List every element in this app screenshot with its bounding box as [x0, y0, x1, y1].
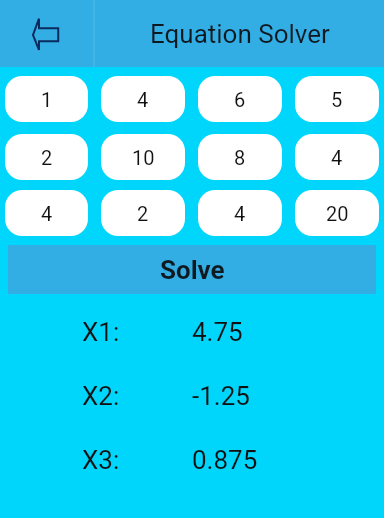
button[interactable]: 5	[295, 76, 379, 122]
staticText: 4	[331, 146, 343, 169]
staticText: 1	[41, 88, 53, 111]
staticText: Equation Solver	[150, 19, 330, 49]
staticText: -1.25	[192, 381, 250, 411]
staticText: 8	[234, 146, 246, 169]
button[interactable]: 6	[198, 76, 282, 122]
staticText: X1:	[82, 317, 192, 347]
staticText: 2	[137, 202, 149, 225]
staticText: 5	[331, 88, 343, 111]
button[interactable]: Back	[18, 0, 74, 67]
staticText: X3:	[82, 445, 192, 475]
staticText: 4	[137, 88, 149, 111]
button[interactable]: 4	[295, 134, 379, 180]
button[interactable]: 4	[5, 190, 88, 236]
button[interactable]: 2	[5, 134, 88, 180]
staticText: 2	[41, 146, 53, 169]
button[interactable]: 4	[101, 76, 185, 122]
staticText: 6	[234, 88, 246, 111]
button[interactable]: 20	[295, 190, 379, 236]
button[interactable]: 10	[101, 134, 185, 180]
button[interactable]: 8	[198, 134, 282, 180]
staticText: 4	[41, 202, 53, 225]
button[interactable]: 1	[5, 76, 88, 122]
staticText: 0.875	[192, 445, 258, 475]
staticText: 4.75	[192, 317, 243, 347]
staticText: 10	[132, 146, 155, 169]
staticText: 20	[326, 202, 349, 225]
button[interactable]: Solve	[8, 245, 376, 294]
staticText: Solve	[160, 255, 225, 285]
button[interactable]: 2	[101, 190, 185, 236]
staticText: X2:	[82, 381, 192, 411]
staticText: 4	[234, 202, 246, 225]
button[interactable]: 4	[198, 190, 282, 236]
